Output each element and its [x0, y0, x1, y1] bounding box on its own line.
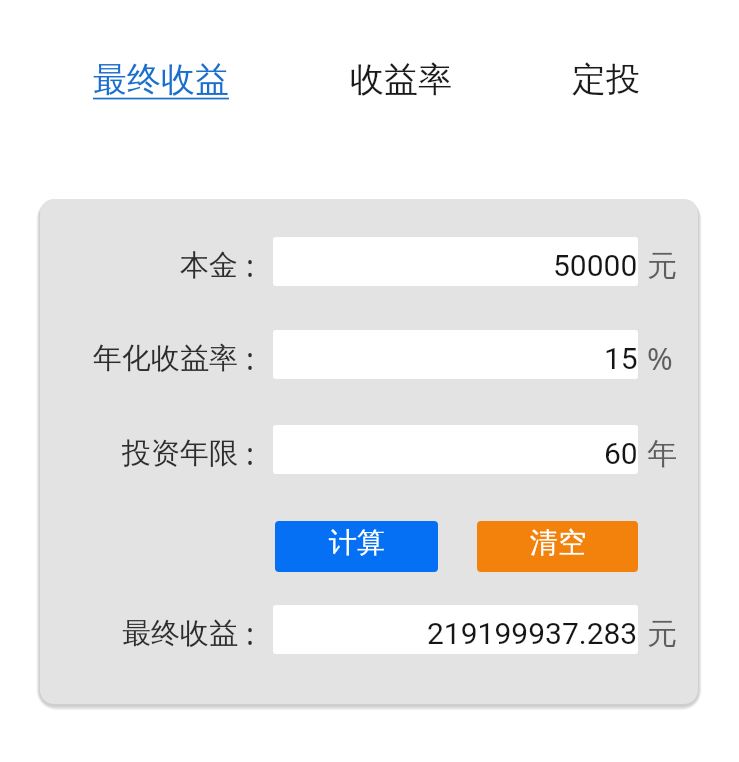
- staticText: :: [246, 433, 255, 474]
- staticText: 元: [647, 247, 677, 285]
- staticText: %: [647, 337, 673, 379]
- staticText: 年化收益率: [93, 340, 238, 377]
- staticText: 清空: [530, 525, 586, 560]
- button[interactable]: 收益率: [296, 56, 506, 102]
- button[interactable]: 计算: [275, 521, 438, 572]
- staticText: 最终收益: [122, 615, 238, 652]
- staticText: 元: [647, 615, 677, 653]
- staticText: 60: [604, 436, 638, 471]
- staticText: :: [246, 338, 255, 379]
- button[interactable]: 本金: [273, 237, 638, 286]
- button[interactable]: 最终收益: [273, 605, 638, 654]
- button[interactable]: 清空: [477, 521, 638, 572]
- button[interactable]: 投资年限: [273, 425, 638, 474]
- staticText: 年: [647, 435, 677, 473]
- staticText: 定投: [572, 58, 640, 101]
- staticText: 投资年限: [122, 435, 238, 472]
- staticText: :: [246, 613, 255, 654]
- staticText: 219199937.283: [427, 616, 638, 651]
- staticText: 收益率: [350, 58, 452, 101]
- staticText: 本金: [180, 247, 238, 284]
- button[interactable]: 年化收益率: [273, 330, 638, 379]
- staticText: 15: [604, 341, 638, 376]
- staticText: :: [246, 245, 255, 286]
- button[interactable]: 定投: [506, 56, 705, 102]
- button[interactable]: 最终收益: [25, 56, 296, 102]
- staticText: 计算: [329, 525, 385, 560]
- staticText: 50000: [553, 248, 638, 283]
- staticText: 最终收益: [93, 58, 229, 101]
